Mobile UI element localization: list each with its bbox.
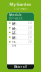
staticText: Schedule — [9, 13, 22, 17]
button[interactable]: Monstera — [7, 40, 34, 44]
button[interactable]: Monstera — [7, 26, 34, 30]
staticText: Monstera — [12, 18, 17, 28]
button[interactable]: Monstera — [7, 35, 34, 40]
staticText: My Garden — [9, 2, 31, 7]
staticText: 2d — [28, 31, 32, 34]
staticText: this week — [9, 17, 22, 20]
staticText: 2d — [28, 35, 32, 39]
button[interactable]: Water all — [7, 64, 34, 69]
staticText: 6 to water — [13, 7, 27, 10]
staticText: 2d — [28, 21, 32, 25]
staticText: Monstera — [12, 27, 17, 38]
staticText: 2d — [28, 40, 32, 44]
staticText: Monstera — [12, 22, 17, 33]
button[interactable]: Monstera — [7, 30, 34, 35]
staticText: Water all — [14, 65, 27, 69]
staticText: Monstera — [12, 36, 17, 47]
staticText: 2d — [28, 26, 32, 29]
staticText: Monstera — [12, 32, 17, 42]
button[interactable]: Monstera — [7, 21, 34, 26]
